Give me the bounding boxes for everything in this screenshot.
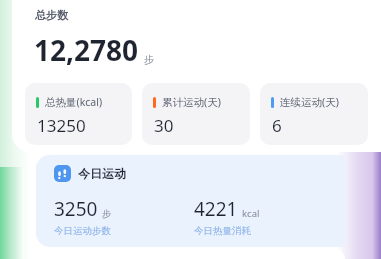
button[interactable]: 连续运动(天) — [260, 83, 368, 145]
staticText: kcal — [242, 207, 260, 220]
staticText: 4221 — [194, 196, 238, 222]
staticText: 13250 — [37, 114, 86, 137]
staticText: 步 — [102, 208, 112, 220]
staticText: 今日运动 — [78, 166, 126, 181]
staticText: 步 — [144, 53, 154, 66]
staticText: 30 — [154, 114, 174, 137]
staticText: 今日热量消耗 — [194, 225, 251, 237]
staticText: 12,2780 — [34, 31, 139, 69]
staticText: 总步数 — [35, 8, 68, 22]
staticText: 6 — [272, 114, 282, 137]
button[interactable]: 总热量(kcal) — [25, 83, 132, 145]
staticText: 总热量(kcal) — [45, 95, 103, 109]
staticText: 3250 — [54, 196, 98, 222]
staticText: 连续运动(天) — [280, 95, 339, 109]
staticText: 今日运动步数 — [54, 225, 111, 237]
other: 今日运动 — [54, 165, 71, 182]
button[interactable]: 累计运动(天) — [142, 83, 250, 145]
button[interactable]: 今日运动 — [36, 155, 345, 247]
staticText: 累计运动(天) — [162, 95, 221, 109]
